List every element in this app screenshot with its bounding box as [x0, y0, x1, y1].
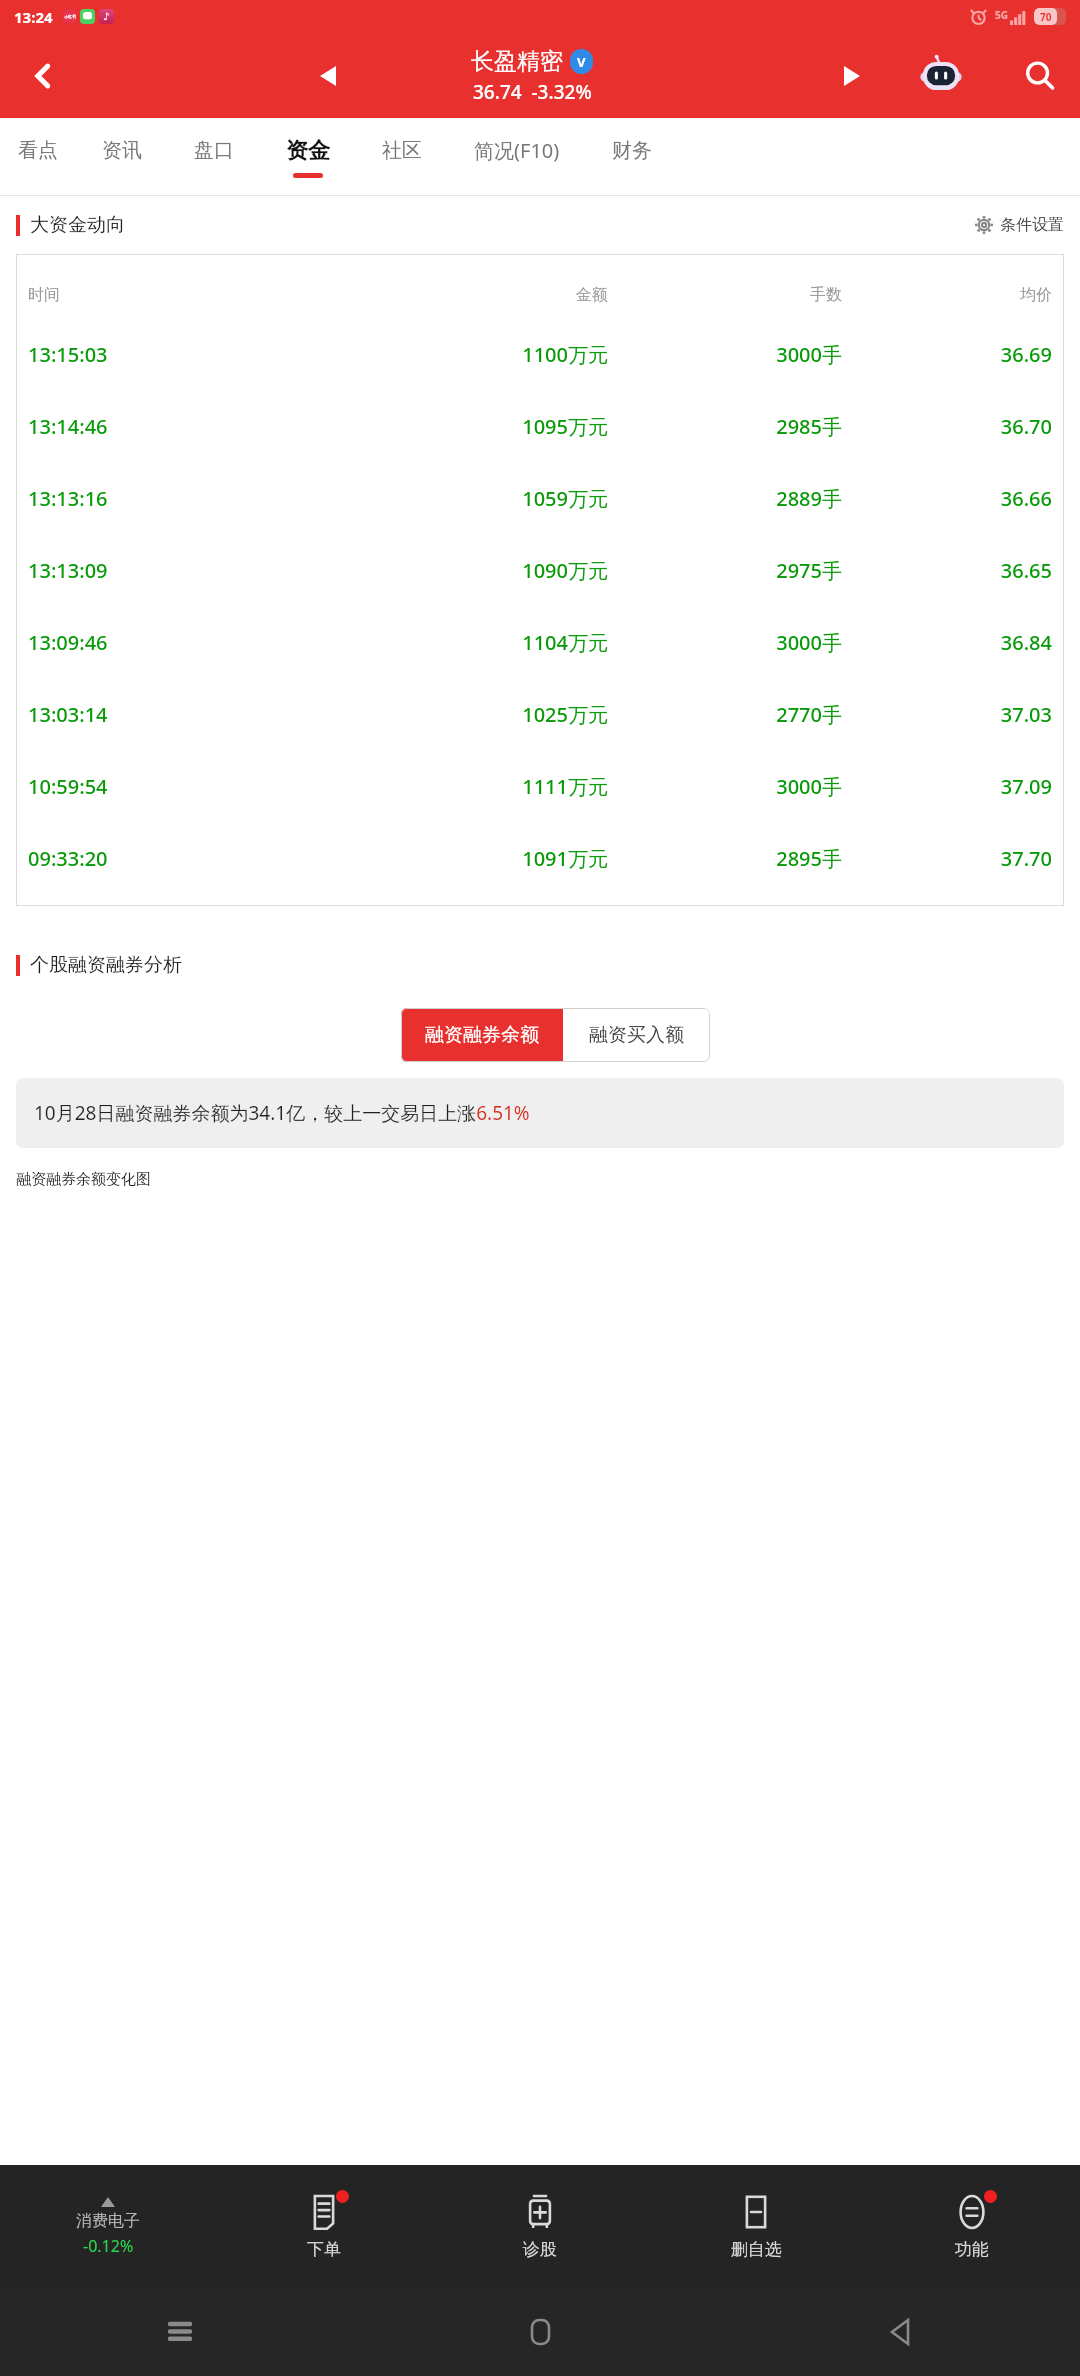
- staticText: 1090万元: [300, 557, 608, 584]
- button[interactable]: Next stock: [824, 48, 880, 104]
- staticText: -0.12%: [83, 2235, 134, 2257]
- staticText: 36.74 -3.32%: [473, 79, 592, 105]
- staticText: 手数: [608, 285, 842, 305]
- staticText: 13:24: [14, 7, 53, 27]
- staticText: 个股融资融券分析: [30, 953, 182, 977]
- button[interactable]: 13:15:03: [16, 318, 1064, 390]
- button[interactable]: AI assistant: [914, 49, 968, 103]
- button[interactable]: Recents: [0, 2288, 360, 2376]
- staticText: 盘口: [194, 138, 234, 163]
- staticText: 1059万元: [300, 485, 608, 512]
- staticText: 5G: [995, 8, 1008, 22]
- button[interactable]: Previous stock: [300, 48, 356, 104]
- button[interactable]: 财务: [586, 118, 678, 196]
- button[interactable]: 看点: [0, 118, 76, 196]
- staticText: 13:14:46: [28, 413, 300, 440]
- staticText: 2770手: [608, 701, 842, 728]
- staticText: 消费电子: [76, 2211, 140, 2231]
- button[interactable]: 13:14:46: [16, 390, 1064, 462]
- staticText: 10月28日融资融券余额为34.1亿，较上一交易日上涨6.51%: [34, 1100, 530, 1126]
- button[interactable]: 融资买入额: [563, 1008, 710, 1062]
- staticText: 13:15:03: [28, 341, 300, 368]
- staticText: 3000手: [608, 773, 842, 800]
- staticText: 36.69: [842, 341, 1052, 368]
- staticText: 37.03: [842, 701, 1052, 728]
- button[interactable]: 删自选: [648, 2165, 864, 2288]
- staticText: 长盈精密: [471, 47, 563, 76]
- button[interactable]: 条件设置: [974, 215, 1064, 235]
- staticText: 功能: [955, 2239, 989, 2260]
- staticText: 1091万元: [300, 845, 608, 872]
- staticText: 1025万元: [300, 701, 608, 728]
- staticText: 2889手: [608, 485, 842, 512]
- staticText: 简况(F10): [474, 137, 560, 164]
- staticText: 10:59:54: [28, 773, 300, 800]
- button[interactable]: 资讯: [76, 118, 168, 196]
- staticText: 13:13:16: [28, 485, 300, 512]
- button[interactable]: Search: [1000, 33, 1080, 118]
- button[interactable]: Back: [720, 2288, 1080, 2376]
- staticText: ♪: [103, 11, 110, 23]
- button[interactable]: 简况(F10): [448, 118, 586, 196]
- staticText: 小红书: [64, 14, 76, 19]
- button[interactable]: 长盈精密: [471, 47, 593, 105]
- staticText: 诊股: [523, 2239, 557, 2260]
- staticText: 37.70: [842, 845, 1052, 872]
- button[interactable]: 消费电子: [0, 2165, 216, 2288]
- button[interactable]: 13:13:09: [16, 534, 1064, 606]
- staticText: 下单: [307, 2239, 341, 2260]
- staticText: 均价: [842, 285, 1052, 305]
- staticText: 13:09:46: [28, 629, 300, 656]
- button[interactable]: 社区: [356, 118, 448, 196]
- staticText: 36.70: [842, 413, 1052, 440]
- staticText: 2895手: [608, 845, 842, 872]
- button[interactable]: 09:33:20: [16, 822, 1064, 894]
- button[interactable]: 下单: [216, 2165, 432, 2288]
- staticText: 1104万元: [300, 629, 608, 656]
- staticText: 删自选: [731, 2239, 782, 2260]
- staticText: 融资融券余额变化图: [16, 1170, 151, 1189]
- staticText: 70: [1040, 10, 1052, 24]
- button[interactable]: 10:59:54: [16, 750, 1064, 822]
- button[interactable]: 13:03:14: [16, 678, 1064, 750]
- staticText: 1111万元: [300, 773, 608, 800]
- staticText: 2975手: [608, 557, 842, 584]
- staticText: 3000手: [608, 629, 842, 656]
- button[interactable]: 13:13:16: [16, 462, 1064, 534]
- staticText: 09:33:20: [28, 845, 300, 872]
- staticText: 大资金动向: [30, 213, 125, 237]
- staticText: 13:13:09: [28, 557, 300, 584]
- staticText: 2985手: [608, 413, 842, 440]
- staticText: 财务: [612, 138, 652, 163]
- button[interactable]: 融资融券余额: [401, 1008, 563, 1062]
- button[interactable]: Back: [0, 33, 86, 118]
- button[interactable]: 13:09:46: [16, 606, 1064, 678]
- staticText: 时间: [28, 285, 300, 305]
- staticText: 36.84: [842, 629, 1052, 656]
- staticText: 36.66: [842, 485, 1052, 512]
- staticText: 1100万元: [300, 341, 608, 368]
- button[interactable]: 盘口: [168, 118, 260, 196]
- staticText: 1095万元: [300, 413, 608, 440]
- staticText: 13:03:14: [28, 701, 300, 728]
- staticText: 3000手: [608, 341, 842, 368]
- staticText: 融资融券余额: [425, 1023, 539, 1047]
- button[interactable]: 资金: [260, 118, 356, 196]
- staticText: 37.09: [842, 773, 1052, 800]
- staticText: 条件设置: [1000, 215, 1064, 235]
- staticText: 社区: [382, 138, 422, 163]
- staticText: 资金: [286, 137, 330, 165]
- staticText: 金额: [300, 285, 608, 305]
- staticText: 资讯: [102, 138, 142, 163]
- staticText: 融资买入额: [589, 1023, 684, 1047]
- staticText: V: [577, 53, 586, 71]
- staticText: 看点: [18, 138, 58, 163]
- button[interactable]: 诊股: [432, 2165, 648, 2288]
- staticText: 36.65: [842, 557, 1052, 584]
- button[interactable]: Home: [360, 2288, 720, 2376]
- button[interactable]: 功能: [864, 2165, 1080, 2288]
